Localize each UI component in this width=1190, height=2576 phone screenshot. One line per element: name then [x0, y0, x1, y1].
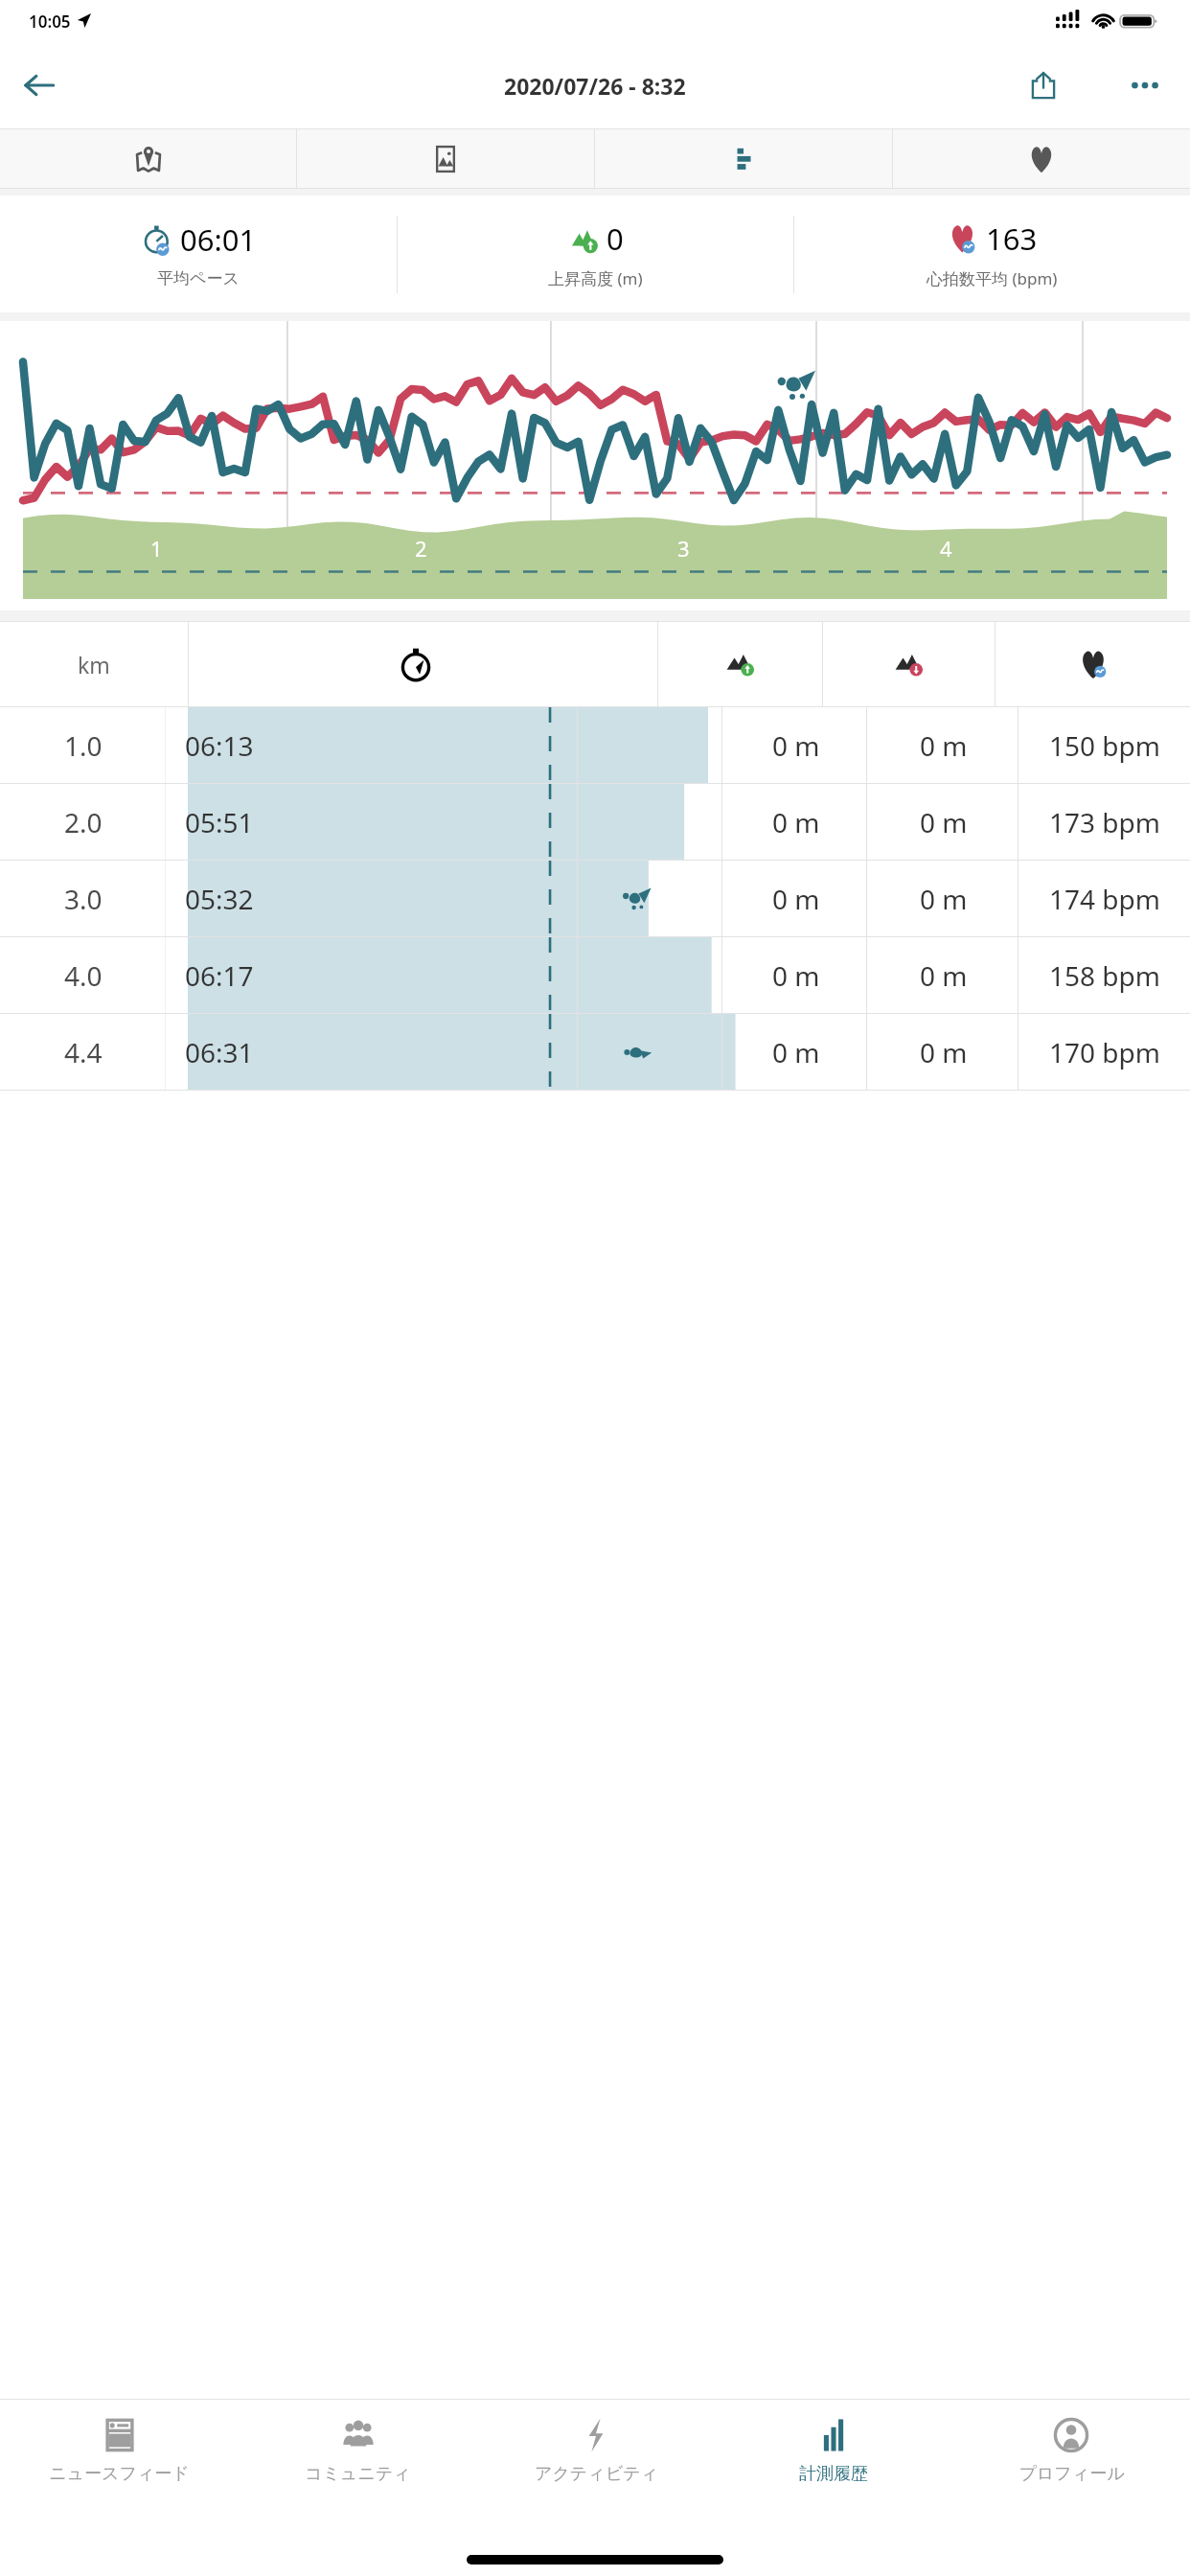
staticText: 05:32	[185, 881, 254, 917]
button[interactable]: Statistics	[595, 128, 892, 189]
staticText: 0 m	[772, 1034, 820, 1070]
button[interactable]: Share	[1016, 57, 1071, 113]
button[interactable]: 2.0	[0, 784, 1190, 860]
button[interactable]: 06:01	[0, 195, 397, 312]
staticText: 0 m	[920, 1034, 968, 1070]
button[interactable]: More options	[1117, 57, 1173, 113]
button[interactable]: Heart rate	[893, 128, 1190, 189]
staticText: 2.0	[64, 804, 103, 840]
button[interactable]: コミュニティ	[239, 2400, 477, 2543]
button[interactable]: 1.0	[0, 707, 1190, 783]
staticText: 0 m	[920, 804, 968, 840]
staticText: 158 bpm	[1049, 957, 1160, 994]
staticText: 3	[677, 534, 690, 563]
staticText: 1	[150, 534, 163, 563]
staticText: 0	[606, 218, 624, 259]
button[interactable]: 163	[794, 195, 1190, 312]
button[interactable]: Photos	[297, 128, 594, 189]
staticText: 計測履歴	[799, 2463, 868, 2485]
button[interactable]: Map	[0, 128, 296, 189]
staticText: 心拍数平均 (bpm)	[927, 267, 1058, 289]
staticText: 06:17	[185, 957, 254, 994]
staticText: 0 m	[772, 957, 820, 994]
staticText: 4.0	[64, 957, 103, 994]
staticText: 2	[415, 534, 427, 563]
staticText: km	[78, 650, 110, 679]
staticText: コミュニティ	[305, 2463, 411, 2485]
staticText: 0 m	[920, 881, 968, 917]
staticText: アクティビティ	[535, 2463, 658, 2485]
button[interactable]: 0	[398, 195, 793, 312]
button[interactable]: 4.4	[0, 1014, 1190, 1090]
button[interactable]: ニュースフィード	[0, 2400, 239, 2543]
staticText: 0 m	[772, 804, 820, 840]
staticText: 150 bpm	[1049, 727, 1160, 764]
staticText: 0 m	[772, 881, 820, 917]
button[interactable]: 1	[0, 321, 1190, 610]
staticText: 平均ペース	[157, 268, 240, 288]
button[interactable]: プロフィール	[952, 2400, 1190, 2543]
staticText: 上昇高度 (m)	[548, 267, 643, 289]
staticText: 05:51	[185, 804, 254, 840]
staticText: 0 m	[920, 727, 968, 764]
staticText: 174 bpm	[1049, 881, 1160, 917]
button[interactable]: アクティビティ	[477, 2400, 715, 2543]
button[interactable]: 3.0	[0, 861, 1190, 936]
staticText: 10:05	[29, 11, 71, 33]
staticText: 163	[986, 218, 1038, 259]
staticText: 0 m	[920, 957, 968, 994]
staticText: ニュースフィード	[49, 2463, 190, 2485]
staticText: 170 bpm	[1049, 1034, 1160, 1070]
staticText: 1.0	[64, 727, 103, 764]
staticText: 4.4	[64, 1034, 103, 1070]
staticText: 06:13	[185, 727, 254, 764]
button[interactable]: 計測履歴	[715, 2400, 952, 2543]
staticText: 06:01	[180, 219, 257, 260]
staticText: 173 bpm	[1049, 804, 1160, 840]
staticText: 3.0	[64, 881, 103, 917]
button[interactable]: 4.0	[0, 937, 1190, 1013]
staticText: 2020/07/26 - 8:32	[504, 71, 686, 101]
staticText: 4	[940, 534, 952, 563]
staticText: プロフィール	[1018, 2463, 1125, 2485]
button[interactable]: Back	[11, 57, 67, 113]
staticText: 0 m	[772, 727, 820, 764]
staticText: 06:31	[185, 1034, 254, 1070]
